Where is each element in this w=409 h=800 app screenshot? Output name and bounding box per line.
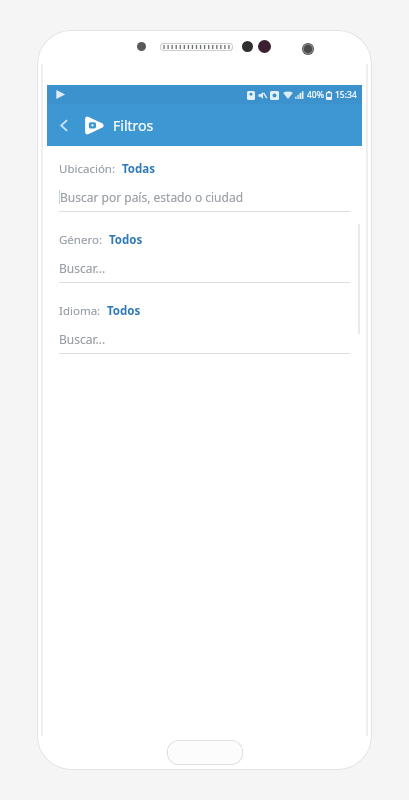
staticText: Género:	[59, 232, 103, 248]
staticText: 15:34	[335, 89, 357, 101]
staticText: Buscar...	[59, 260, 106, 276]
staticText: Idioma:	[59, 303, 101, 319]
staticText: Todos	[107, 303, 141, 319]
staticText: Ubicación:	[59, 161, 116, 177]
button[interactable]: Back	[47, 108, 81, 142]
button[interactable]: Home	[167, 740, 243, 765]
staticText: Buscar...	[59, 331, 106, 347]
staticText: Filtros	[113, 116, 154, 135]
staticText: Todas	[122, 161, 155, 177]
button[interactable]: Todos	[106, 302, 142, 320]
button[interactable]: Buscar por país, estado o ciudad	[59, 185, 350, 209]
staticText: 40%	[307, 89, 324, 101]
button[interactable]: Todos	[108, 231, 144, 249]
button[interactable]: Todas	[121, 160, 156, 178]
button[interactable]: Buscar...	[59, 256, 350, 280]
staticText: Todos	[109, 232, 143, 248]
staticText: Buscar por país, estado o ciudad	[60, 189, 244, 205]
button[interactable]: Buscar...	[59, 327, 350, 351]
